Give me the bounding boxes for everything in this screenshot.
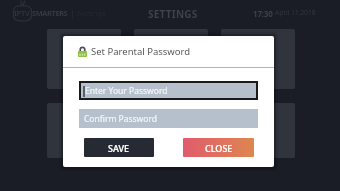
staticText: 17:30 <box>253 8 273 19</box>
staticText: SETTINGS <box>148 7 198 21</box>
staticText: | <box>70 7 75 19</box>
staticText: IPTV <box>14 8 30 18</box>
staticText: Set Parental Password <box>91 45 191 58</box>
staticText: Confirm Password <box>84 113 157 125</box>
button[interactable]: Enter Your Password <box>81 83 256 98</box>
button[interactable]: SAVE <box>84 138 154 157</box>
button[interactable]: CLOSE <box>183 138 254 157</box>
staticText: April 11,2018 <box>275 8 316 18</box>
staticText: CLOSE <box>205 142 233 154</box>
staticText: SAVE <box>108 142 130 154</box>
staticText: Enter Your Password <box>85 85 168 97</box>
button[interactable]: Confirm Password <box>79 109 258 128</box>
staticText: SMARTERS <box>32 8 68 18</box>
